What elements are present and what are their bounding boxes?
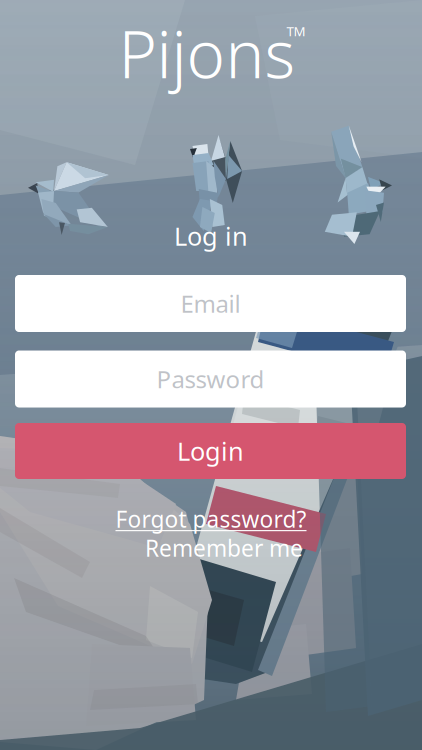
staticText: Login	[177, 434, 244, 468]
button[interactable]: Email	[15, 275, 406, 332]
staticText: Email	[180, 288, 240, 319]
button[interactable]: Password	[15, 350, 406, 407]
button[interactable]: Login	[15, 423, 406, 479]
button[interactable]: Forgot password?	[81, 506, 341, 532]
staticText: Password	[156, 363, 264, 395]
staticText: Remember me	[145, 533, 303, 563]
staticText: Forgot password?	[115, 504, 306, 534]
staticText: TM	[286, 22, 305, 40]
staticText: Log in	[174, 219, 248, 253]
button[interactable]: Remember me	[114, 535, 334, 561]
staticText: Pijons	[118, 10, 295, 96]
